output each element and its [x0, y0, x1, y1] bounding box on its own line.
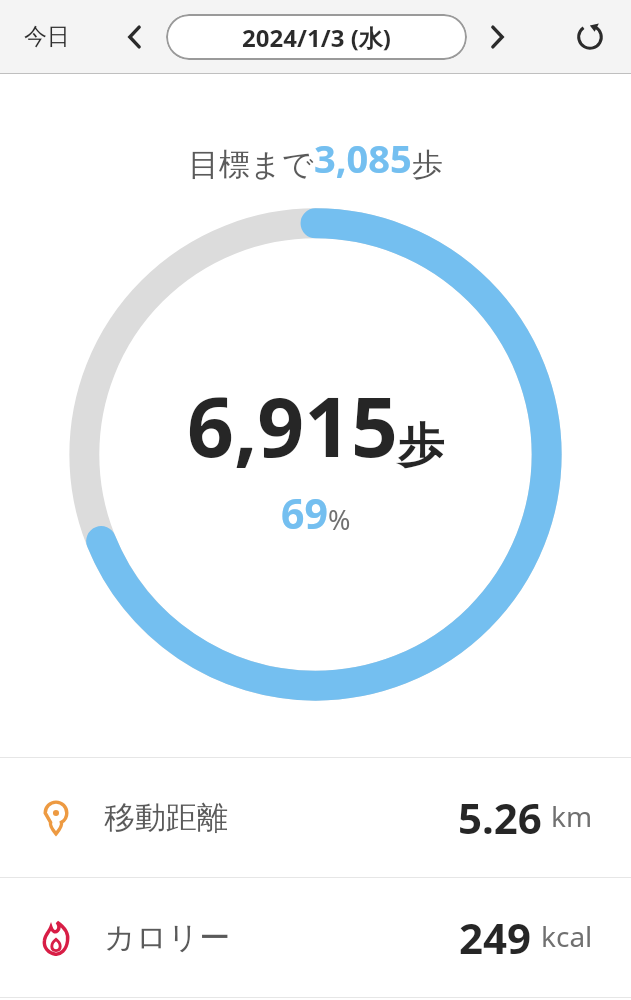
- staticText: 69: [281, 485, 328, 541]
- other: Distance: [36, 798, 76, 838]
- staticText: %: [328, 501, 351, 538]
- staticText: 2024/1/3 (水): [242, 21, 391, 54]
- button[interactable]: 2024/1/3 (水): [166, 14, 467, 60]
- staticText: 5.26: [458, 789, 542, 846]
- staticText: 6,915: [187, 369, 398, 481]
- button[interactable]: Refresh: [565, 12, 615, 62]
- staticText: 3,085: [314, 132, 412, 184]
- staticText: km: [551, 797, 593, 835]
- staticText: 目標まで: [188, 145, 314, 184]
- staticText: 249: [459, 909, 532, 966]
- button[interactable]: Calories: [0, 878, 631, 997]
- button[interactable]: 今日: [18, 16, 76, 57]
- staticText: カロリー: [104, 918, 231, 957]
- staticText: 歩: [412, 145, 443, 184]
- staticText: 今日: [24, 22, 70, 51]
- other: Calories: [36, 918, 76, 958]
- staticText: kcal: [541, 917, 593, 955]
- staticText: 歩: [398, 417, 444, 475]
- button[interactable]: Previous day: [112, 14, 158, 60]
- button[interactable]: Distance: [0, 758, 631, 877]
- button[interactable]: Next day: [474, 14, 520, 60]
- staticText: 移動距離: [104, 798, 228, 837]
